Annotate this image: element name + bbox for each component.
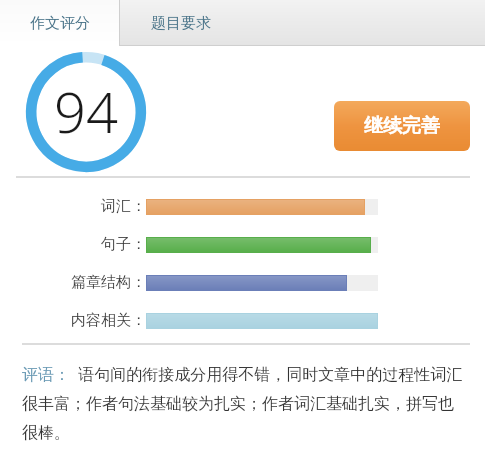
staticText: 句子： [101,235,146,254]
staticText: 篇章结构： [71,273,146,292]
button[interactable]: 继续完善 [334,101,470,151]
staticText: 94 [54,73,118,149]
staticText: 继续完善 [364,114,440,138]
staticText: 内容相关： [71,311,146,330]
button[interactable]: 题目要求 [120,0,241,46]
button[interactable]: 作文评分 [0,0,119,46]
staticText: 词汇： [101,197,146,216]
staticText: 评语： 语句间的衔接成分用得不错，同时文章中的过程性词汇很丰富；作者句法基础较为… [22,363,467,442]
staticText: 题目要求 [151,14,211,33]
staticText: 作文评分 [30,14,90,33]
